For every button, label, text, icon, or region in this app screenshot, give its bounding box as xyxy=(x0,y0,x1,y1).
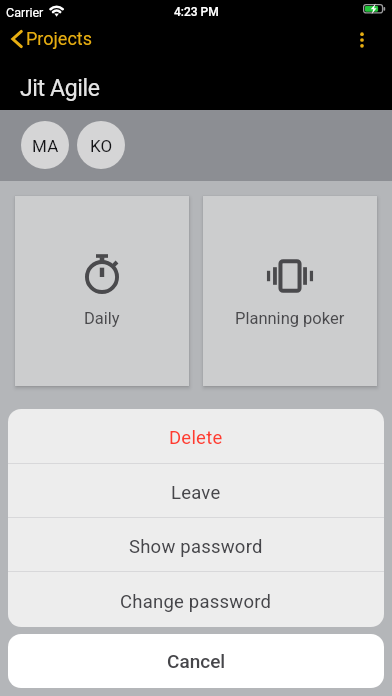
button[interactable]: Show password xyxy=(8,518,384,571)
staticText: Daily xyxy=(84,309,120,328)
button[interactable]: More options xyxy=(343,21,380,59)
button[interactable]: Leave xyxy=(8,464,384,517)
button[interactable]: Change password xyxy=(8,572,384,627)
staticText: Planning poker xyxy=(235,309,345,328)
button[interactable]: KO xyxy=(77,121,125,169)
staticText: MA xyxy=(32,136,59,156)
staticText: Leave xyxy=(171,482,221,504)
button[interactable]: Cancel xyxy=(8,634,384,688)
staticText: Show password xyxy=(129,536,263,558)
staticText: Projects xyxy=(26,28,92,49)
button[interactable]: Planning poker xyxy=(203,196,377,386)
staticText: Carrier xyxy=(6,5,44,20)
button[interactable]: Delete xyxy=(8,409,384,463)
button[interactable]: Daily xyxy=(15,196,189,386)
button[interactable]: MA xyxy=(21,121,69,169)
staticText: Cancel xyxy=(167,650,226,672)
staticText: Jit Agile xyxy=(20,75,100,102)
button[interactable]: Projects xyxy=(11,28,92,49)
staticText: KO xyxy=(90,136,113,156)
staticText: Delete xyxy=(169,427,223,449)
staticText: 4:23 PM xyxy=(174,5,219,19)
staticText: Change password xyxy=(120,591,272,613)
